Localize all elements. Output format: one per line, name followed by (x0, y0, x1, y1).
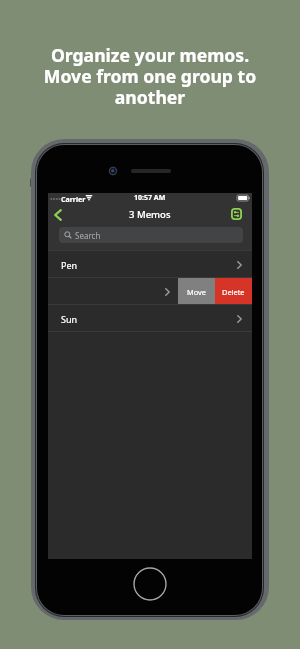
button[interactable] (48, 278, 178, 305)
button[interactable]: Move (178, 278, 215, 305)
staticText: Sun (61, 313, 78, 325)
button[interactable]: Sort memos (228, 206, 244, 222)
button[interactable]: Back (48, 203, 68, 225)
button[interactable]: Sun (48, 305, 252, 332)
button[interactable]: Delete (215, 278, 252, 305)
staticText: Search (75, 230, 101, 241)
staticText: 10:57 AM (134, 193, 166, 203)
staticText: Pen (61, 259, 78, 271)
staticText: Organize your memos. Move from one group… (0, 43, 300, 109)
button[interactable]: Pen (48, 251, 252, 278)
staticText: Carrier (61, 195, 86, 205)
staticText: Delete (222, 287, 245, 297)
staticText: 3 Memos (129, 208, 171, 221)
staticText: Move (187, 287, 206, 297)
button[interactable]: Search (59, 227, 243, 243)
